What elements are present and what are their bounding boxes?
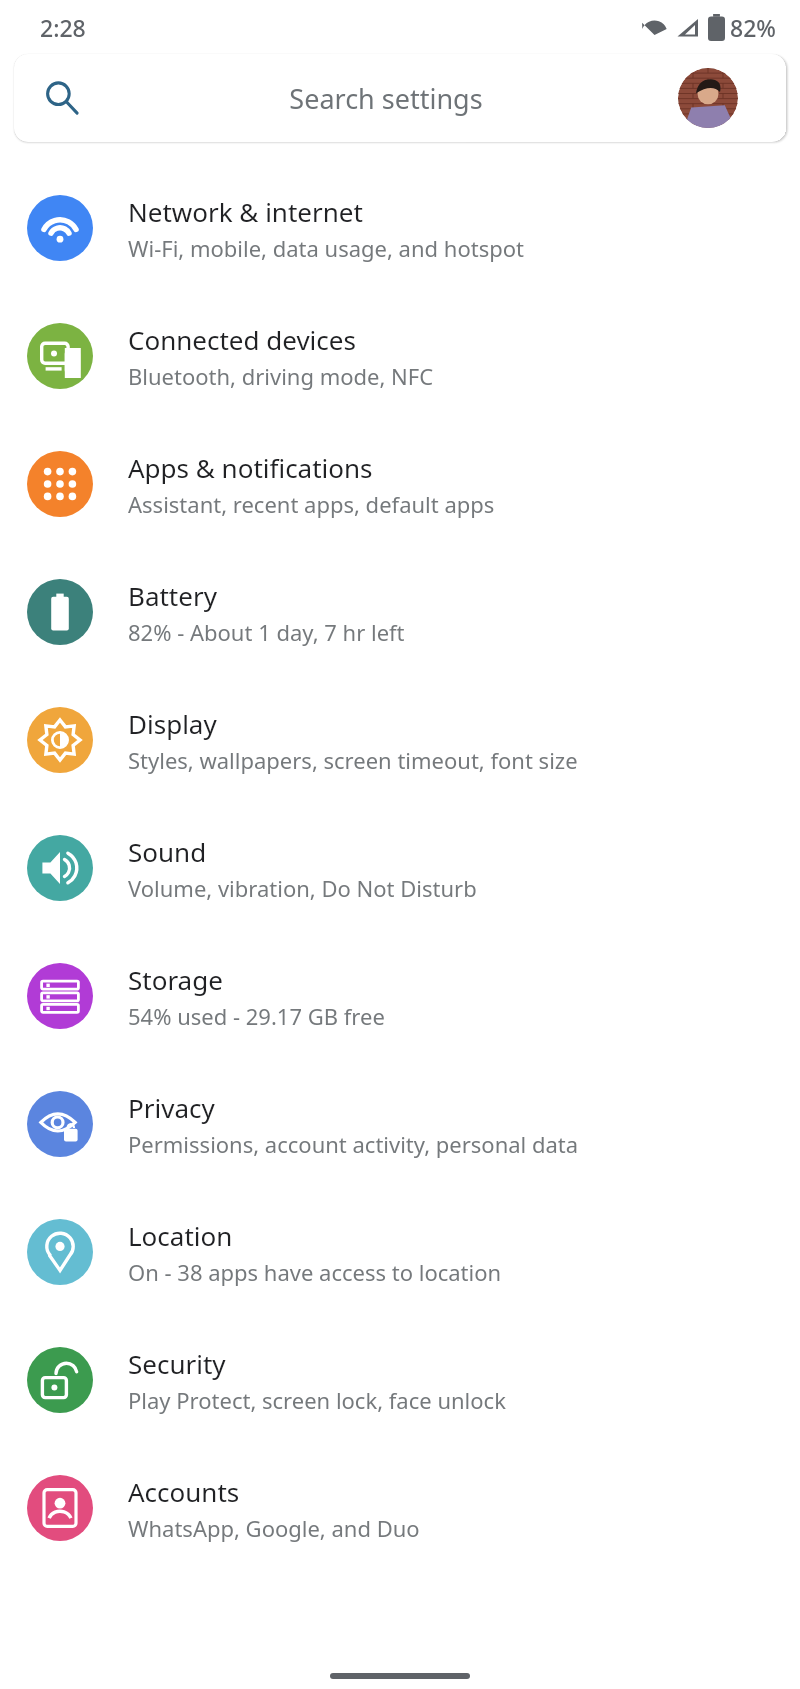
staticText: Assistant, recent apps, default apps xyxy=(128,489,495,519)
staticText: Play Protect, screen lock, face unlock xyxy=(128,1385,506,1415)
staticText: Display xyxy=(128,706,217,741)
button[interactable]: Sound xyxy=(0,804,800,932)
button[interactable]: Accounts xyxy=(0,1444,800,1572)
staticText: Wi-Fi, mobile, data usage, and hotspot xyxy=(128,233,524,263)
staticText: Location xyxy=(128,1218,233,1253)
staticText: Network & internet xyxy=(128,194,363,229)
staticText: Security xyxy=(128,1346,226,1381)
staticText: Volume, vibration, Do Not Disturb xyxy=(128,873,477,903)
staticText: Accounts xyxy=(128,1474,240,1509)
button[interactable]: Network & internet xyxy=(0,164,800,292)
staticText: Privacy xyxy=(128,1090,215,1125)
staticText: Styles, wallpapers, screen timeout, font… xyxy=(128,745,578,775)
other: Search xyxy=(44,80,80,116)
button[interactable]: Search xyxy=(14,54,786,142)
button[interactable]: Display xyxy=(0,676,800,804)
button[interactable]: Privacy xyxy=(0,1060,800,1188)
staticText: WhatsApp, Google, and Duo xyxy=(128,1513,420,1543)
button[interactable]: Account xyxy=(678,68,738,128)
staticText: Battery xyxy=(128,578,217,613)
button[interactable]: Connected devices xyxy=(0,292,800,420)
staticText: Connected devices xyxy=(128,322,356,357)
button[interactable]: Location xyxy=(0,1188,800,1316)
staticText: 2:28 xyxy=(40,12,86,43)
staticText: 82% - About 1 day, 7 hr left xyxy=(128,617,405,647)
staticText: On - 38 apps have access to location xyxy=(128,1257,502,1287)
staticText: Bluetooth, driving mode, NFC xyxy=(128,361,434,391)
staticText: Permissions, account activity, personal … xyxy=(128,1129,579,1159)
button[interactable]: Security xyxy=(0,1316,800,1444)
staticText: Apps & notifications xyxy=(128,450,373,485)
button[interactable]: Apps & notifications xyxy=(0,420,800,548)
staticText: Sound xyxy=(128,834,207,869)
staticText: 82% xyxy=(730,12,776,43)
button[interactable]: Battery xyxy=(0,548,800,676)
staticText: 54% used - 29.17 GB free xyxy=(128,1001,385,1031)
button[interactable]: Storage xyxy=(0,932,800,1060)
staticText: Search settings xyxy=(289,80,483,117)
staticText: Storage xyxy=(128,962,223,997)
